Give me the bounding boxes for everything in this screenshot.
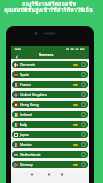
- staticText: Italy: [20, 122, 28, 127]
- staticText: คุณสมบัติขั้นสูงเข้าใช้ทำให้หาวีพีเอ็น: [4, 6, 93, 15]
- staticText: Japan: [20, 132, 30, 137]
- button[interactable]: Spain: [12, 71, 88, 78]
- staticText: Servers: [39, 52, 54, 57]
- button[interactable]: Netherlands: [12, 151, 88, 158]
- staticText: Norway: [20, 162, 33, 167]
- button[interactable]: Norway: [12, 161, 88, 168]
- button[interactable]: Hong Kong: [12, 101, 88, 108]
- button[interactable]: Denmark: [12, 61, 88, 68]
- staticText: France: [20, 82, 31, 87]
- staticText: Ireland: [20, 112, 32, 117]
- staticText: Mexico: [20, 142, 32, 147]
- button[interactable]: United Kingdom: [12, 91, 88, 98]
- staticText: Netherlands: [20, 152, 41, 157]
- staticText: United Kingdom: [20, 92, 47, 97]
- staticText: ลองใช้งานฟรีตลอดชีพ: [22, 0, 76, 9]
- staticText: Denmark: [20, 62, 36, 67]
- staticText: Hong Kong: [20, 102, 39, 107]
- button[interactable]: France: [12, 81, 88, 88]
- button[interactable]: Mexico: [12, 141, 88, 148]
- button[interactable]: Japan: [12, 131, 88, 138]
- button[interactable]: Back: [13, 53, 20, 60]
- button[interactable]: Ireland: [12, 111, 88, 118]
- staticText: Spain: [20, 72, 30, 77]
- button[interactable]: Italy: [12, 121, 88, 128]
